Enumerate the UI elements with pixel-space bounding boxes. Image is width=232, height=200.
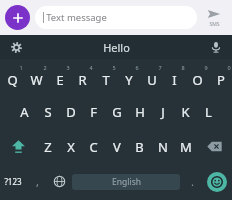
staticText: D: [66, 103, 76, 121]
staticText: N: [158, 138, 168, 156]
staticText: R: [78, 71, 87, 89]
staticText: S: [44, 103, 52, 121]
button[interactable]: Space: [72, 174, 180, 190]
button[interactable]: 7: [140, 59, 163, 94]
staticText: 8: [181, 64, 185, 71]
button[interactable]: 9: [186, 59, 209, 94]
staticText: O: [192, 71, 203, 89]
button[interactable]: 8: [163, 59, 186, 94]
staticText: L: [205, 103, 212, 121]
button[interactable]: Comma: [26, 164, 48, 199]
button[interactable]: B: [128, 129, 151, 164]
button[interactable]: Period: [182, 164, 202, 199]
staticText: .: [191, 174, 194, 189]
staticText: SMS: [209, 21, 220, 28]
button[interactable]: Voice input: [200, 35, 232, 59]
staticText: Y: [125, 71, 133, 89]
staticText: 2: [43, 64, 47, 71]
button[interactable]: Text message: [35, 6, 197, 29]
staticText: X: [67, 138, 75, 156]
staticText: Text message: [46, 11, 107, 24]
staticText: ?123: [4, 176, 22, 187]
button[interactable]: Send SMS: [201, 0, 227, 35]
staticText: W: [30, 71, 43, 89]
button[interactable]: 3: [48, 59, 71, 94]
button[interactable]: X: [59, 129, 82, 164]
staticText: T: [102, 71, 110, 89]
staticText: Z: [44, 138, 52, 156]
staticText: P: [217, 71, 225, 89]
button[interactable]: 5: [94, 59, 117, 94]
staticText: F: [90, 103, 97, 121]
staticText: 7: [158, 64, 162, 71]
button[interactable]: S: [36, 94, 59, 129]
staticText: ,: [36, 174, 39, 189]
button[interactable]: 6: [117, 59, 140, 94]
staticText: E: [56, 71, 64, 89]
button[interactable]: Change language: [48, 164, 70, 199]
button[interactable]: C: [82, 129, 105, 164]
staticText: 0: [227, 64, 231, 71]
button[interactable]: Emoji: [202, 164, 232, 199]
button[interactable]: 2: [24, 59, 48, 94]
button[interactable]: M: [174, 129, 197, 164]
button[interactable]: V: [105, 129, 128, 164]
button[interactable]: 0: [209, 59, 232, 94]
staticText: H: [135, 103, 145, 121]
button[interactable]: Hello: [32, 35, 200, 59]
staticText: K: [181, 103, 190, 121]
staticText: M: [180, 138, 192, 156]
button[interactable]: G: [105, 94, 128, 129]
staticText: Hello: [103, 40, 130, 55]
staticText: V: [113, 138, 121, 156]
staticText: C: [89, 138, 98, 156]
button[interactable]: Z: [36, 129, 59, 164]
button[interactable]: H: [128, 94, 151, 129]
button[interactable]: D: [59, 94, 82, 129]
button[interactable]: ?123: [0, 164, 26, 199]
button[interactable]: Backspace: [197, 129, 232, 164]
staticText: J: [161, 103, 165, 121]
button[interactable]: A: [13, 94, 36, 129]
staticText: G: [112, 103, 122, 121]
staticText: 3: [66, 64, 70, 71]
staticText: I: [172, 71, 177, 89]
button[interactable]: Shift: [0, 129, 36, 164]
staticText: 5: [112, 64, 116, 71]
button[interactable]: K: [174, 94, 197, 129]
staticText: 9: [204, 64, 208, 71]
staticText: English: [112, 176, 141, 188]
staticText: Q: [7, 71, 18, 89]
staticText: 4: [89, 64, 93, 71]
button[interactable]: Add attachment: [5, 5, 30, 30]
button[interactable]: Settings: [0, 35, 32, 59]
button[interactable]: J: [151, 94, 174, 129]
staticText: 6: [135, 64, 139, 71]
button[interactable]: 4: [71, 59, 94, 94]
button[interactable]: F: [82, 94, 105, 129]
staticText: 1: [19, 64, 23, 71]
staticText: U: [147, 71, 157, 89]
button[interactable]: L: [197, 94, 220, 129]
button[interactable]: N: [151, 129, 174, 164]
staticText: B: [135, 138, 144, 156]
button[interactable]: 1: [0, 59, 24, 94]
staticText: A: [20, 103, 29, 121]
